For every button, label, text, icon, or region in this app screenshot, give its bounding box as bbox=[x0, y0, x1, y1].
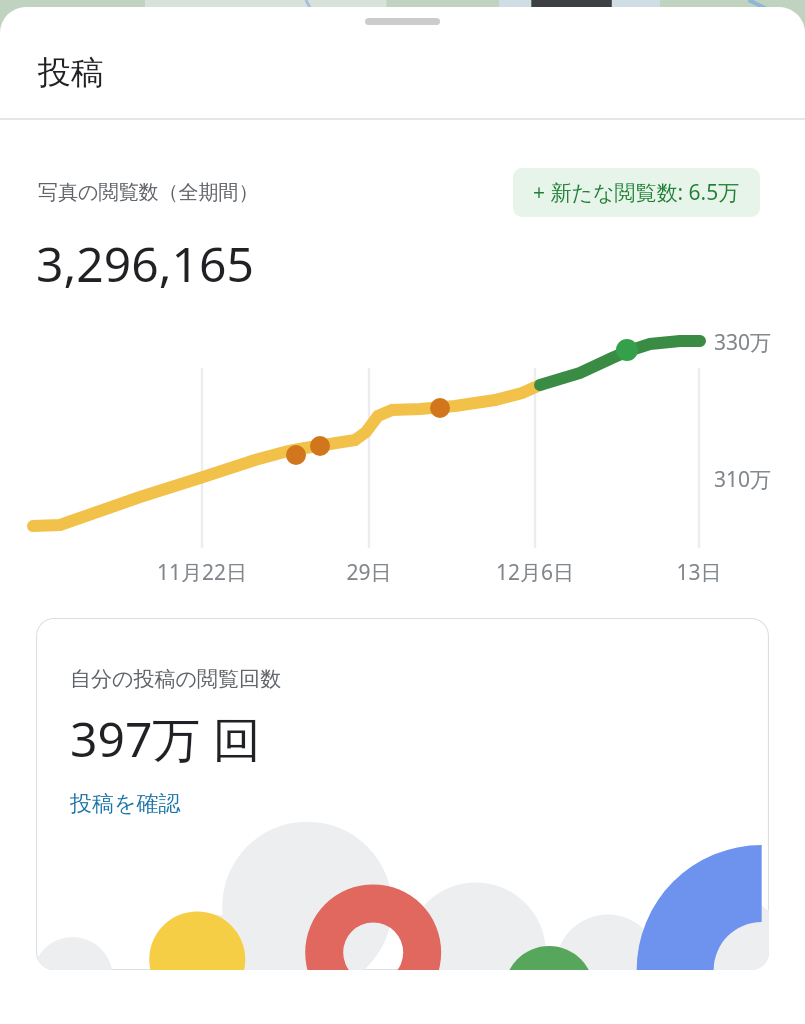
button[interactable]: + 新たな閲覧数: 6.5万 bbox=[513, 168, 760, 217]
staticText: 29日 bbox=[294, 558, 444, 587]
staticText: 397万 回 bbox=[70, 706, 261, 772]
staticText: + 新たな閲覧数: 6.5万 bbox=[533, 178, 740, 207]
staticText: 12月6日 bbox=[460, 558, 610, 587]
staticText: 11月22日 bbox=[127, 558, 277, 587]
staticText: 3,296,165 bbox=[36, 231, 254, 296]
staticText: 330万 bbox=[714, 328, 772, 357]
staticText: 自分の投稿の閲覧回数 bbox=[70, 666, 281, 692]
button[interactable]: 自分の投稿の閲覧回数 bbox=[36, 618, 769, 970]
staticText: 13日 bbox=[624, 558, 774, 587]
staticText: 310万 bbox=[714, 465, 772, 494]
staticText: 写真の閲覧数（全期間） bbox=[38, 180, 259, 205]
staticText: 投稿 bbox=[38, 52, 104, 94]
button[interactable]: 投稿を確認 bbox=[70, 790, 181, 818]
staticText: 投稿を確認 bbox=[70, 790, 181, 818]
